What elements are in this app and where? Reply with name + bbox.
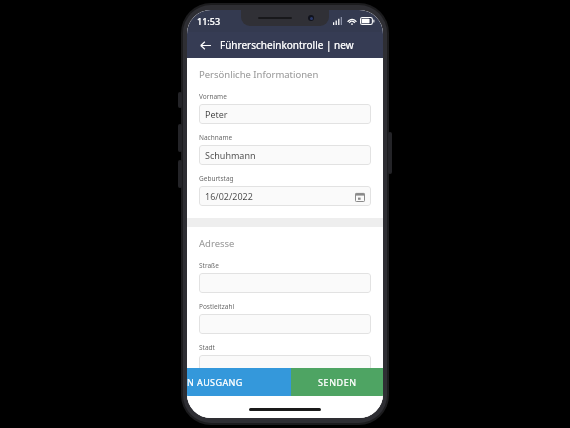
button[interactable] [199, 273, 371, 293]
button[interactable]: 16/02/2022 [199, 186, 371, 206]
staticText: Peter [205, 108, 365, 120]
staticText: Schuhmann [205, 149, 365, 161]
staticText [205, 359, 365, 371]
button[interactable]: Peter [199, 104, 371, 124]
staticText: 16/02/2022 [205, 190, 354, 202]
button[interactable]: N AUSGANG SPEICHERN [187, 368, 291, 396]
staticText: Straße [199, 261, 219, 270]
staticText: 11:53 [197, 15, 221, 27]
staticText: Stadt [199, 343, 215, 352]
staticText: Postleitzahl [199, 302, 235, 311]
staticText: Geburtstag [199, 174, 234, 183]
staticText: Führerscheinkontrolle | new [220, 38, 354, 52]
staticText: Nachname [199, 133, 233, 142]
staticText: SENDEN [318, 376, 357, 388]
button[interactable] [199, 314, 371, 334]
staticText: Adresse [199, 237, 235, 250]
staticText: Vorname [199, 92, 227, 101]
staticText: Persönliche Informationen [199, 68, 319, 81]
button[interactable] [199, 355, 371, 375]
button[interactable]: Back [195, 35, 215, 55]
button[interactable]: Pick date [354, 191, 365, 202]
button[interactable]: Schuhmann [199, 145, 371, 165]
staticText: N AUSGANG SPEICHERN [187, 376, 291, 388]
button[interactable]: SENDEN [291, 368, 383, 396]
